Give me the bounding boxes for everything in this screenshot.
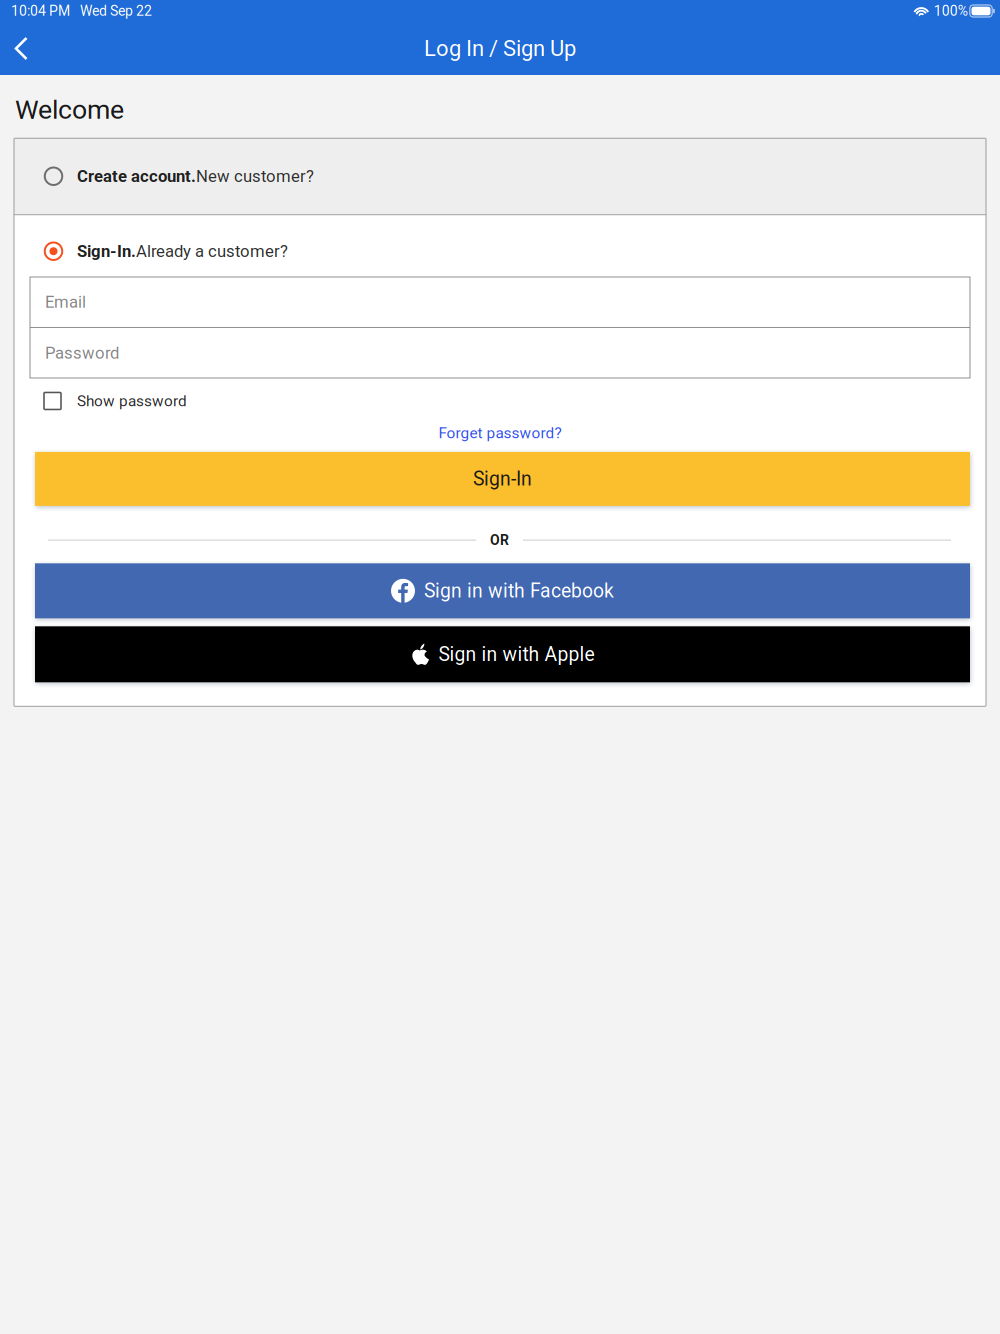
staticText: Email [45, 292, 86, 312]
staticText: Password [45, 343, 119, 363]
staticText: 100% [934, 3, 968, 19]
staticText: Sign in with Facebook [424, 579, 614, 602]
staticText: Already a customer? [136, 241, 288, 261]
staticText: New customer? [196, 166, 314, 186]
staticText: Create account. [77, 166, 196, 186]
button[interactable]: Forget password? [14, 415, 986, 446]
staticText: OR [490, 532, 509, 548]
staticText: Sign-In [473, 468, 532, 490]
button[interactable]: Sign-In. [14, 215, 986, 277]
staticText: 10:04 PM [11, 3, 70, 19]
button[interactable]: Sign-In [35, 452, 970, 506]
button[interactable]: Show password [14, 378, 986, 415]
staticText: Show password [77, 392, 187, 410]
button[interactable]: Create account. [14, 138, 986, 214]
staticText: Forget password? [438, 424, 561, 442]
staticText: Sign-In. [77, 241, 136, 261]
button[interactable]: Sign in with Apple [35, 626, 970, 682]
staticText: Log In / Sign Up [424, 36, 576, 61]
staticText: Sign in with Apple [438, 643, 594, 666]
button[interactable]: Sign in with Facebook [35, 563, 970, 618]
button[interactable]: Back [0, 22, 46, 74]
staticText: Welcome [15, 94, 124, 125]
staticText: Wed Sep 22 [80, 3, 152, 19]
